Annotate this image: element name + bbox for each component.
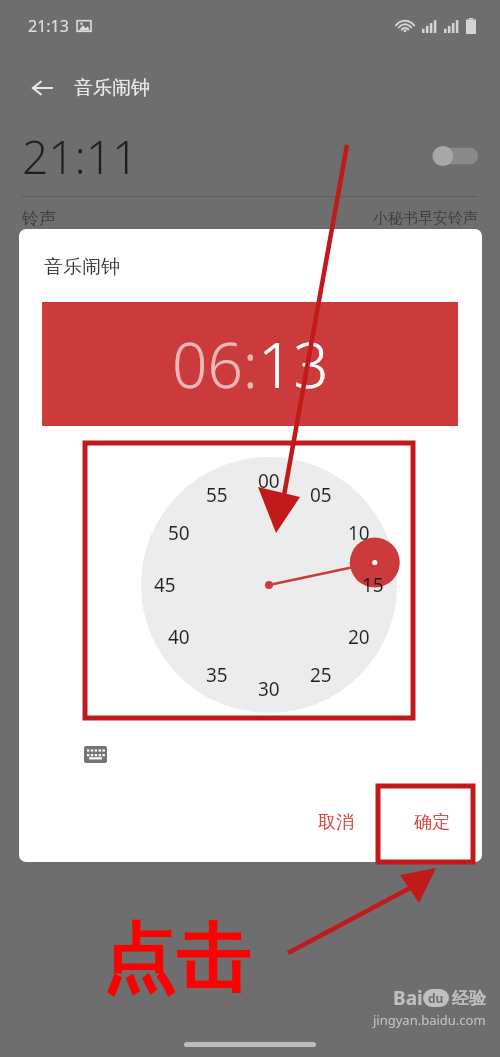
- staticText: jingyan.baidu.com: [373, 1011, 486, 1029]
- staticText: 铃声: [22, 208, 56, 229]
- staticText: 25: [310, 662, 332, 688]
- staticText: du: [428, 990, 444, 1006]
- staticText: 00: [258, 468, 280, 494]
- staticText: 10: [348, 520, 370, 546]
- staticText: Bai: [393, 985, 423, 1011]
- button[interactable]: Switch to keyboard input: [75, 737, 115, 771]
- staticText: 45: [154, 572, 176, 598]
- staticText: 取消: [318, 811, 354, 834]
- staticText: 55: [206, 482, 228, 508]
- staticText: 50: [168, 520, 190, 546]
- staticText: 30: [258, 676, 280, 702]
- staticText: 35: [206, 662, 228, 688]
- staticText: 音乐闹钟: [74, 76, 150, 100]
- staticText: 05: [310, 482, 332, 508]
- staticText: 15: [362, 572, 384, 598]
- button[interactable]: Back: [22, 68, 62, 108]
- button[interactable]: 确定: [396, 801, 468, 844]
- staticText: 40: [168, 624, 190, 650]
- staticText: 小秘书早安铃声: [373, 209, 478, 228]
- staticText: 确定: [414, 811, 450, 834]
- button[interactable]: Alarm toggle: [432, 145, 478, 167]
- staticText: 音乐闹钟: [44, 255, 120, 279]
- staticText: 点击: [102, 913, 250, 1006]
- staticText: 06:13: [172, 322, 329, 406]
- staticText: 21:13: [28, 15, 69, 37]
- staticText: 20: [348, 624, 370, 650]
- staticText: 21:11: [22, 125, 139, 187]
- button[interactable]: [66, 450, 472, 720]
- button[interactable]: 取消: [300, 801, 372, 844]
- staticText: 经验: [452, 988, 486, 1009]
